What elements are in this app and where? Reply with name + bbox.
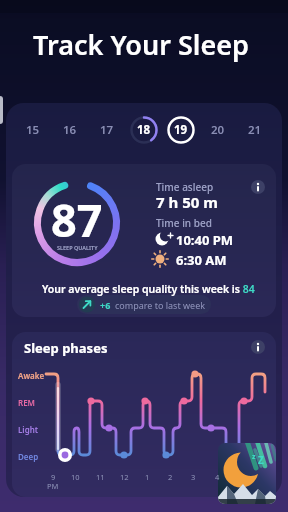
button[interactable]: 21 [237,112,273,148]
staticText: z [252,452,256,462]
button[interactable]: 15 [15,112,51,148]
button[interactable]: 17 [89,112,125,148]
staticText: 10:40 PM [176,231,234,249]
button[interactable] [218,443,276,504]
button[interactable]: 19 [163,112,199,148]
staticText: 12 [120,472,129,482]
staticText: 15 [26,122,40,138]
staticText: PM [47,481,59,491]
staticText: 19 [174,122,188,138]
staticText: Awake [18,370,45,381]
button[interactable]: 20 [200,112,236,148]
staticText: Time asleep [156,180,214,194]
staticText: 10 [71,472,80,482]
staticText: 17 [100,122,114,138]
staticText: Light [18,424,38,435]
staticText: 4 [215,472,220,482]
staticText: Time in bed [156,216,212,230]
staticText: Your average sleep quality this week is … [42,282,255,296]
staticText: 7 h 50 m [156,192,218,212]
staticText: 3 [191,472,196,482]
staticText: 11 [96,472,105,482]
staticText: 6:30 AM [176,251,227,269]
button[interactable]: 16 [52,112,88,148]
staticText: 2 [168,472,173,482]
button[interactable]: 18 [126,112,162,148]
button[interactable] [249,178,267,196]
button[interactable] [249,338,267,356]
staticText: 1 [145,472,150,482]
staticText: 18 [137,122,151,138]
staticText: Deep [18,451,39,462]
staticText: compare to last week [115,299,206,311]
staticText: Track Your Sleep [33,26,249,63]
staticText: 9 [51,472,56,482]
staticText: REM [18,397,36,408]
button[interactable] [12,332,276,497]
staticText: 87 [51,189,103,237]
staticText: SLEEP QUALITY [57,244,98,251]
staticText: Z [258,453,264,467]
staticText: 20 [211,122,225,138]
staticText: 21 [248,122,262,138]
staticText: 16 [63,122,77,138]
button[interactable] [77,295,211,314]
button[interactable] [12,164,276,317]
staticText: Sleep phases [24,339,108,357]
staticText: +6 [100,299,111,311]
